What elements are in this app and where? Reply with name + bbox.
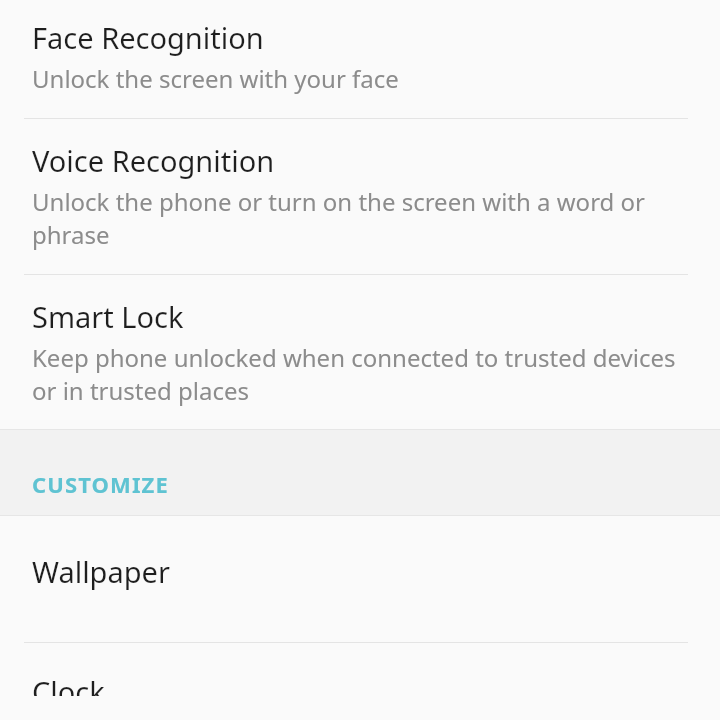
staticText: Voice Recognition	[32, 141, 275, 180]
staticText: Unlock the phone or turn on the screen w…	[32, 185, 688, 251]
staticText: Keep phone unlocked when connected to tr…	[32, 341, 688, 407]
staticText: Unlock the screen with your face	[32, 62, 399, 95]
button[interactable]: Wallpaper	[0, 516, 720, 642]
staticText: Face Recognition	[32, 18, 264, 57]
button[interactable]: Clock	[0, 643, 720, 720]
staticText: Wallpaper	[32, 552, 170, 591]
button[interactable]: Face Recognition	[0, 0, 720, 118]
staticText: CUSTOMIZE	[32, 469, 169, 499]
button[interactable]: Voice Recognition	[0, 119, 720, 274]
staticText: Clock	[32, 672, 105, 696]
button[interactable]: Smart Lock	[0, 275, 720, 429]
staticText: Smart Lock	[32, 297, 184, 336]
